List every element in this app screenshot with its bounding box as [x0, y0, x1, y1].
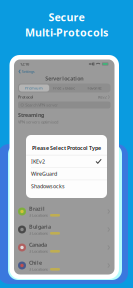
staticText: 3 Locations — [29, 213, 48, 218]
staticText: Canada — [29, 241, 47, 248]
button[interactable]: WireGuard — [26, 168, 107, 180]
button[interactable]: Brazil — [14, 202, 114, 220]
button[interactable]: Protocol — [14, 92, 114, 101]
button[interactable]: Canada — [14, 238, 114, 256]
staticText: IKEv2 — [97, 94, 106, 100]
staticText: VPN servers optimised — [18, 119, 58, 124]
staticText: Streaming — [18, 111, 44, 119]
button[interactable]: Settings — [14, 68, 39, 74]
staticText: Favorite — [87, 85, 101, 91]
button[interactable]: Premium — [19, 84, 49, 91]
staticText: Free + Basic — [53, 85, 75, 91]
button[interactable]: Free + Basic — [49, 84, 79, 91]
staticText: Protocol — [18, 94, 33, 100]
button[interactable]: Shadowsocks — [26, 180, 107, 192]
staticText: Shadowsocks — [31, 183, 65, 190]
button[interactable]: IKEv2 — [26, 155, 107, 167]
staticText: Premium — [25, 85, 43, 91]
staticText: Chile — [29, 259, 42, 266]
staticText: WireGuard — [31, 170, 57, 177]
staticText: Settings — [22, 69, 35, 74]
staticText: 3 Locations — [29, 249, 48, 254]
staticText: Server location — [45, 75, 83, 82]
staticText: 12:10 — [20, 61, 29, 67]
staticText: Search VPN server — [25, 102, 58, 108]
staticText: Secure — [48, 10, 84, 24]
staticText: 3 Locations — [29, 231, 48, 236]
staticText: Bulgaria — [29, 223, 51, 230]
button[interactable]: Chile — [14, 256, 114, 274]
staticText: Brazil — [29, 205, 45, 212]
staticText: 3 Locations — [29, 267, 48, 272]
staticText: Please Select Protocol Type — [32, 144, 101, 151]
staticText: Multi-Protocols — [25, 25, 108, 39]
staticText: IKEv2 — [31, 158, 45, 165]
button[interactable]: Favorite — [79, 84, 109, 91]
button[interactable]: Bulgaria — [14, 220, 114, 238]
